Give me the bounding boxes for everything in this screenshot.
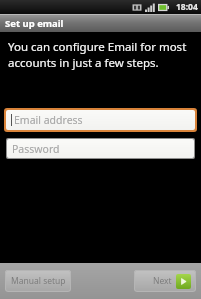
button[interactable]: Next xyxy=(134,270,196,292)
staticText: Manual setup xyxy=(11,275,66,287)
button[interactable]: Password xyxy=(7,139,194,158)
staticText: Email address xyxy=(14,113,83,127)
staticText: Password xyxy=(12,142,60,156)
other: Next xyxy=(176,274,191,289)
button[interactable]: Email address xyxy=(6,110,195,130)
staticText: 18:04 xyxy=(176,1,198,13)
staticText: Next xyxy=(153,275,172,287)
staticText: Set up email xyxy=(5,17,64,30)
staticText: You can configure Email for most account… xyxy=(8,39,187,70)
button[interactable]: Manual setup xyxy=(5,270,71,292)
